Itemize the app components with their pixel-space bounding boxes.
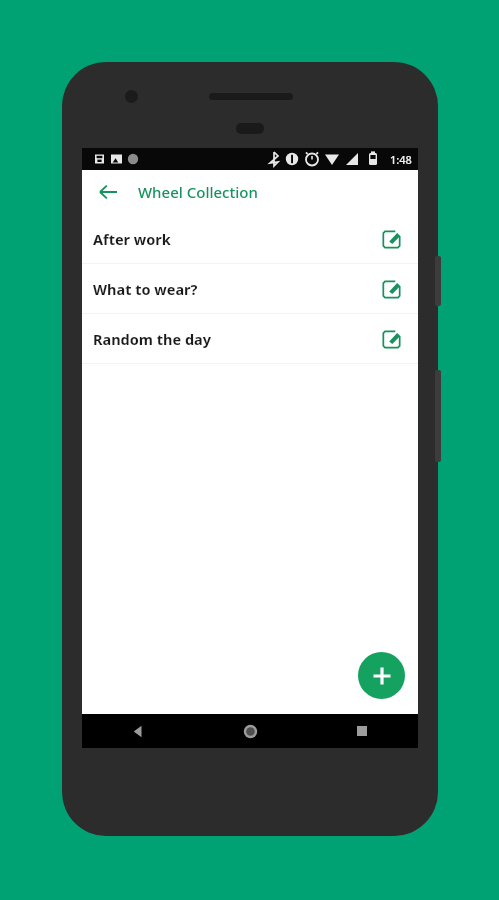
button[interactable]: Back	[82, 714, 194, 748]
button[interactable]: Add	[358, 652, 405, 699]
staticText: What to wear?	[93, 279, 376, 299]
button[interactable]: After work	[82, 214, 418, 263]
button[interactable]: Edit After work	[376, 224, 406, 254]
staticText: After work	[93, 229, 376, 249]
staticText: Wheel Collection	[138, 182, 258, 202]
button[interactable]: Edit Random the day	[376, 324, 406, 354]
staticText: 1:48	[390, 152, 412, 167]
staticText: Random the day	[93, 329, 376, 349]
button[interactable]: Random the day	[82, 314, 418, 363]
button[interactable]: Back	[91, 175, 125, 209]
button[interactable]: Edit What to wear?	[376, 274, 406, 304]
button[interactable]: Home	[194, 714, 306, 748]
button[interactable]: What to wear?	[82, 264, 418, 313]
button[interactable]: Recents	[306, 714, 418, 748]
